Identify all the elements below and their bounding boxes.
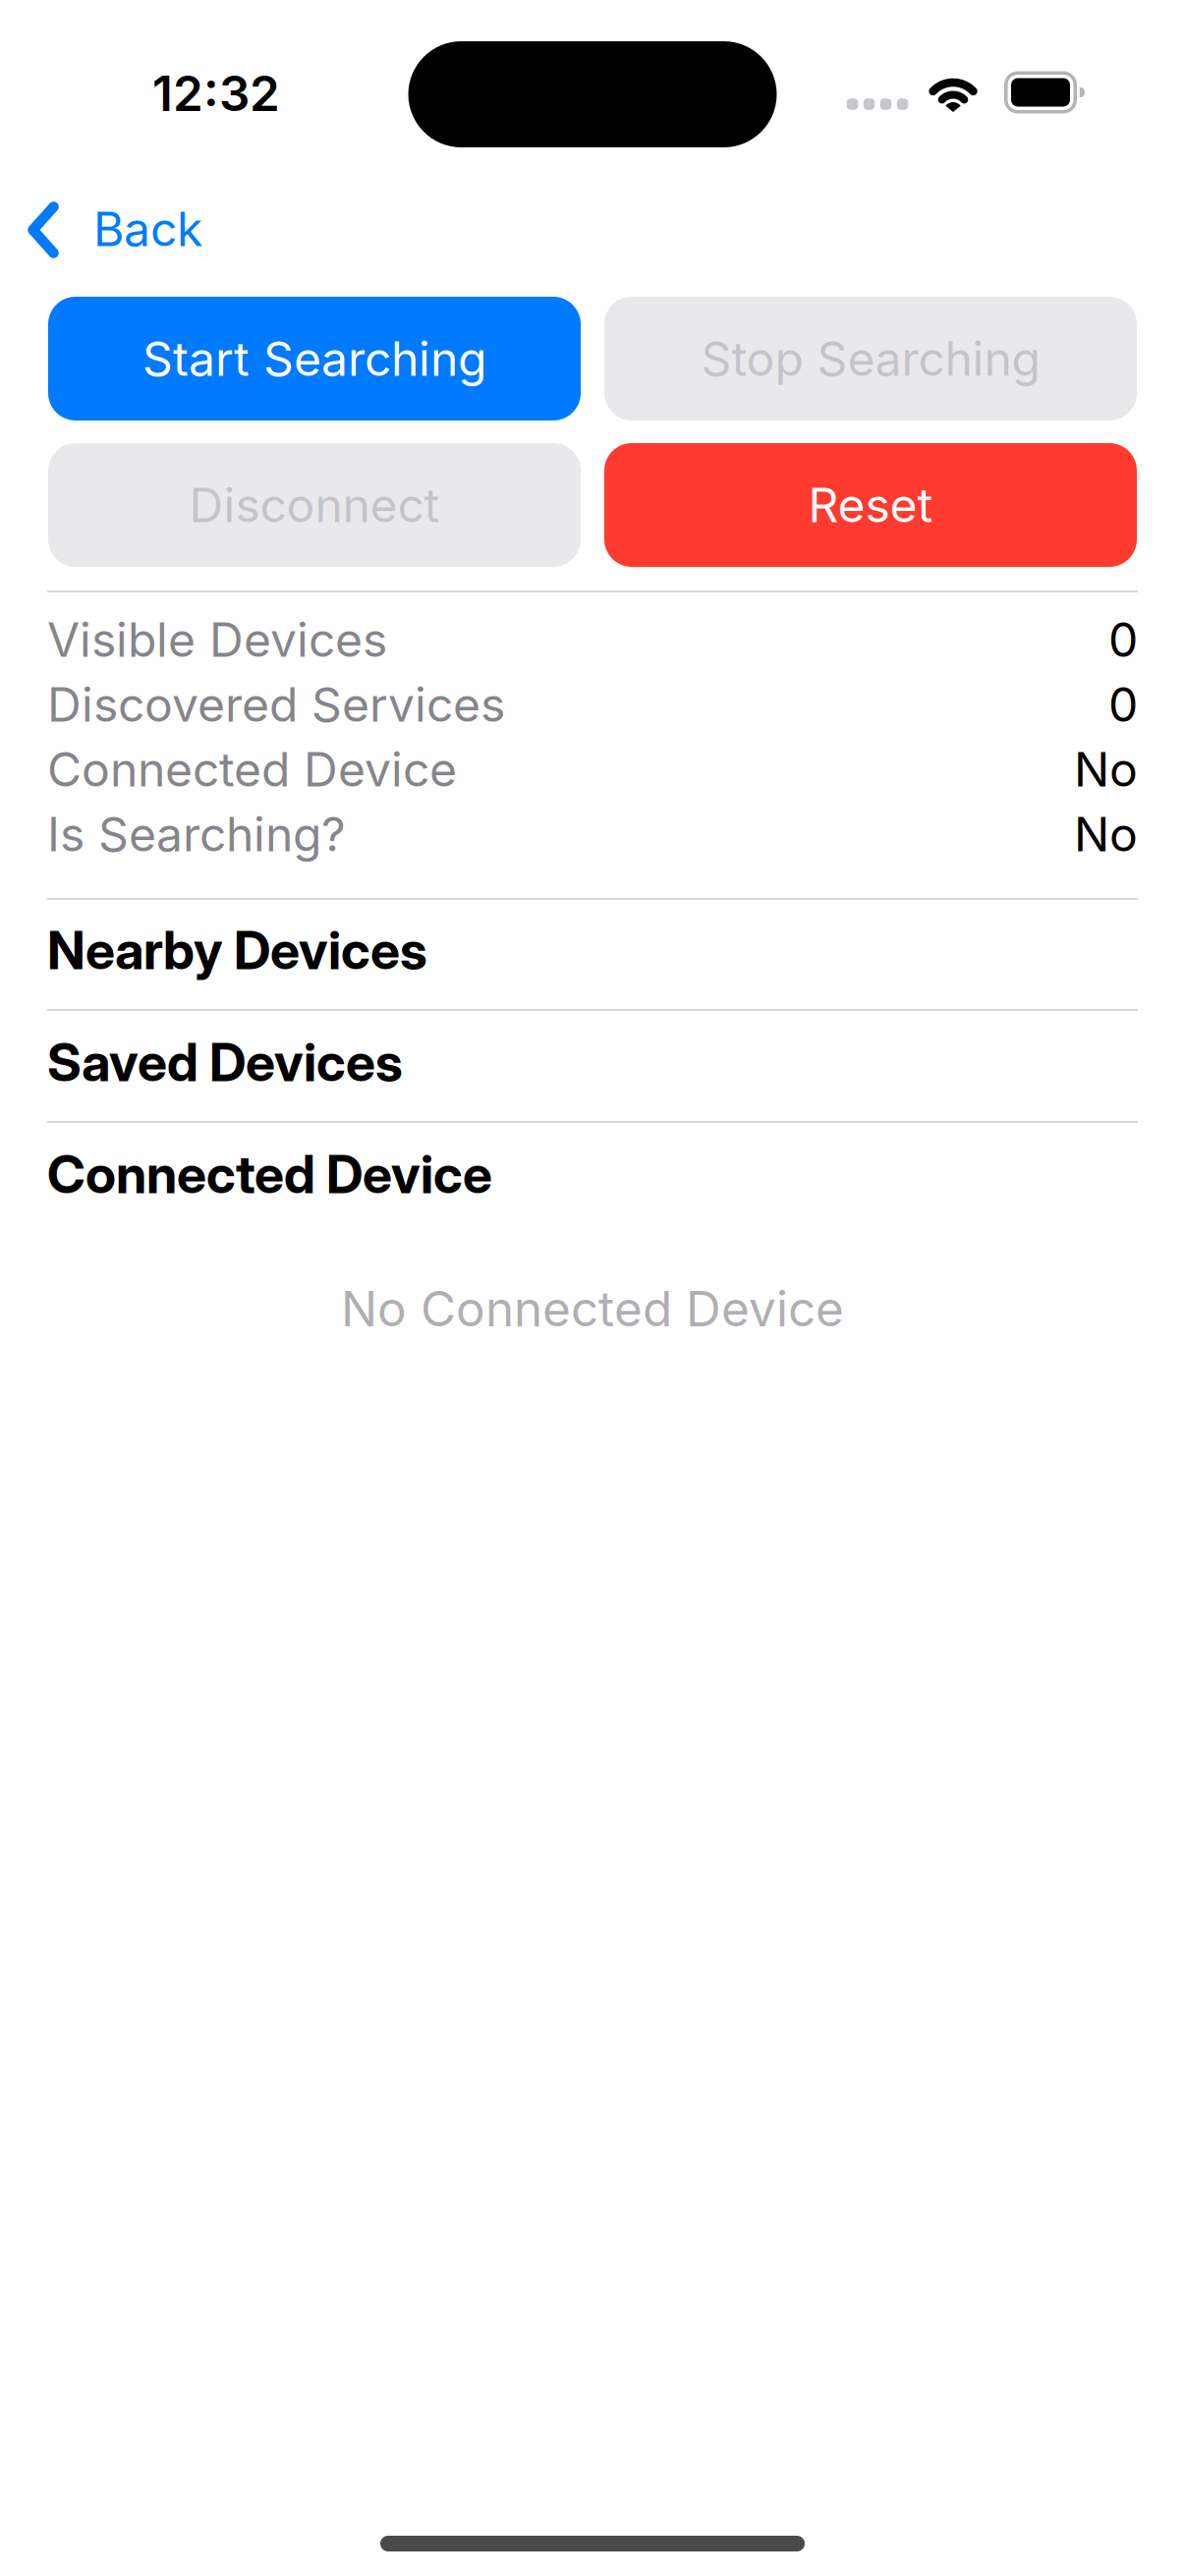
staticText: Discovered Services (47, 676, 505, 733)
staticText: No (1074, 741, 1138, 798)
staticText: 12:32 (152, 64, 280, 123)
staticText: 0 (1108, 676, 1138, 733)
staticText: Connected Device (47, 1142, 492, 1206)
staticText: No (1074, 806, 1138, 863)
staticText: No Connected Device (341, 1279, 844, 1338)
staticText: Back (93, 200, 202, 258)
staticText: Nearby Devices (47, 918, 427, 982)
staticText: 0 (1108, 611, 1138, 668)
staticText: Visible Devices (47, 611, 387, 668)
staticText: Reset (808, 476, 933, 534)
staticText: Stop Searching (701, 330, 1040, 387)
staticText: Start Searching (142, 330, 486, 387)
staticText: Disconnect (189, 476, 440, 534)
staticText: Saved Devices (47, 1030, 403, 1094)
staticText: Is Searching? (47, 806, 346, 863)
staticText: Connected Device (47, 741, 457, 798)
